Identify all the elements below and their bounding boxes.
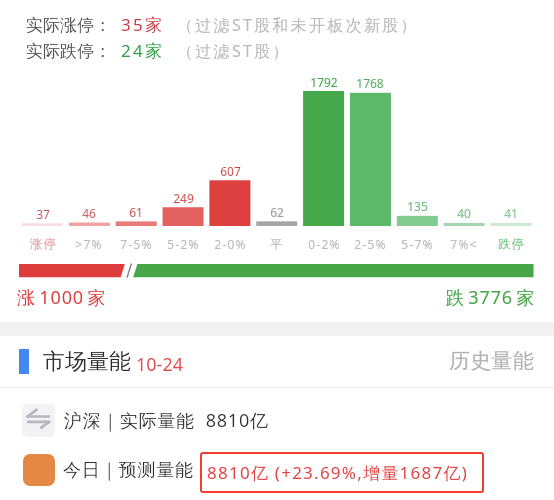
staticText: 跌 3776 家: [446, 285, 535, 310]
staticText: 跌停: [498, 236, 525, 251]
staticText: 平: [270, 236, 284, 251]
staticText: 7%<: [450, 236, 478, 252]
button[interactable]: 切换市场: [22, 394, 554, 446]
staticText: 41: [504, 205, 518, 221]
staticText: 35家: [121, 13, 163, 36]
staticText: >7%: [75, 236, 103, 252]
staticText: 2-5%: [354, 236, 387, 252]
staticText: 61: [129, 204, 143, 220]
staticText: （过滤ST股）: [177, 40, 291, 62]
staticText: 市场量能: [43, 348, 131, 376]
staticText: （过滤ST股和未开板次新股）: [177, 14, 419, 36]
staticText: 10-24: [136, 352, 183, 377]
staticText: 实际跌停：: [26, 41, 111, 62]
staticText: 1792: [310, 74, 338, 90]
button[interactable]: 8810亿 (+23.69%,增量1687亿): [200, 452, 484, 493]
staticText: 46: [82, 205, 96, 221]
staticText: 涨停: [30, 236, 57, 251]
staticText: 24家: [121, 39, 163, 62]
staticText: 实际涨停：: [26, 15, 111, 36]
staticText: 1768: [356, 75, 384, 91]
staticText: 607: [220, 163, 241, 179]
button[interactable]: 历史量能: [449, 348, 535, 374]
staticText: 今日｜预测量能: [63, 459, 194, 482]
staticText: 8810亿 (+23.69%,增量1687亿): [207, 461, 469, 484]
staticText: 沪深｜实际量能 8810亿: [64, 408, 269, 433]
staticText: 135: [407, 198, 428, 214]
staticText: 2-0%: [214, 236, 247, 252]
staticText: 37: [36, 206, 50, 222]
staticText: 40: [457, 205, 471, 221]
staticText: 5-2%: [167, 236, 200, 252]
staticText: 5-7%: [401, 236, 434, 252]
staticText: 历史量能: [449, 348, 535, 374]
other: 切换市场: [22, 404, 55, 437]
staticText: 7-5%: [120, 236, 153, 252]
staticText: 249: [173, 190, 194, 206]
staticText: 62: [270, 204, 284, 220]
staticText: 涨 1000 家: [17, 285, 106, 310]
staticText: 0-2%: [308, 236, 341, 252]
